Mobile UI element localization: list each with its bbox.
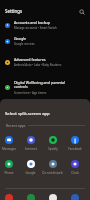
button[interactable]: Clock [64,160,85,175]
staticText: Clock [71,171,79,175]
button[interactable]: Google [0,33,90,49]
staticText: Internet [25,147,37,151]
staticText: Phone [4,171,14,175]
button[interactable] [0,194,19,200]
staticText: Advanced features [14,57,46,62]
button[interactable]: Phone [0,160,19,175]
staticText: Screen time • App timers [14,91,47,95]
button[interactable]: Search [77,7,86,16]
button[interactable] [20,194,41,200]
staticText: Google services [14,42,35,46]
staticText: Google [25,171,36,175]
staticText: Settings [5,8,23,14]
button[interactable] [42,194,63,200]
staticText: Messages [2,147,16,151]
staticText: Manage accounts • Smart Switch [14,26,57,30]
button[interactable]: Messages [0,136,19,151]
staticText: Facebook [68,147,82,151]
button[interactable]: Accounts and backup [0,17,90,33]
staticText: Accounts and backup [14,20,50,25]
button[interactable]: Do not disturb [42,160,63,175]
button[interactable]: Facebook [64,136,85,151]
button[interactable]: Google [20,160,41,175]
staticText: Spotify [48,147,58,151]
button[interactable]: Advanced features [0,54,90,70]
staticText: Recent apps [6,123,26,128]
staticText: Digital Wellbeing and parental controls [14,80,66,90]
staticText: Google [14,36,27,41]
button[interactable]: Recent apps [6,123,28,128]
button[interactable] [64,194,85,200]
staticText: Android Auto • Labs • Baby Routines [14,63,62,67]
button[interactable]: Spotify [42,136,63,151]
button[interactable]: Digital Wellbeing and parental controls [0,79,90,95]
button[interactable]: Internet [20,136,41,151]
staticText: Do not disturb [42,171,63,175]
staticText: Select split-screen app [5,111,50,117]
